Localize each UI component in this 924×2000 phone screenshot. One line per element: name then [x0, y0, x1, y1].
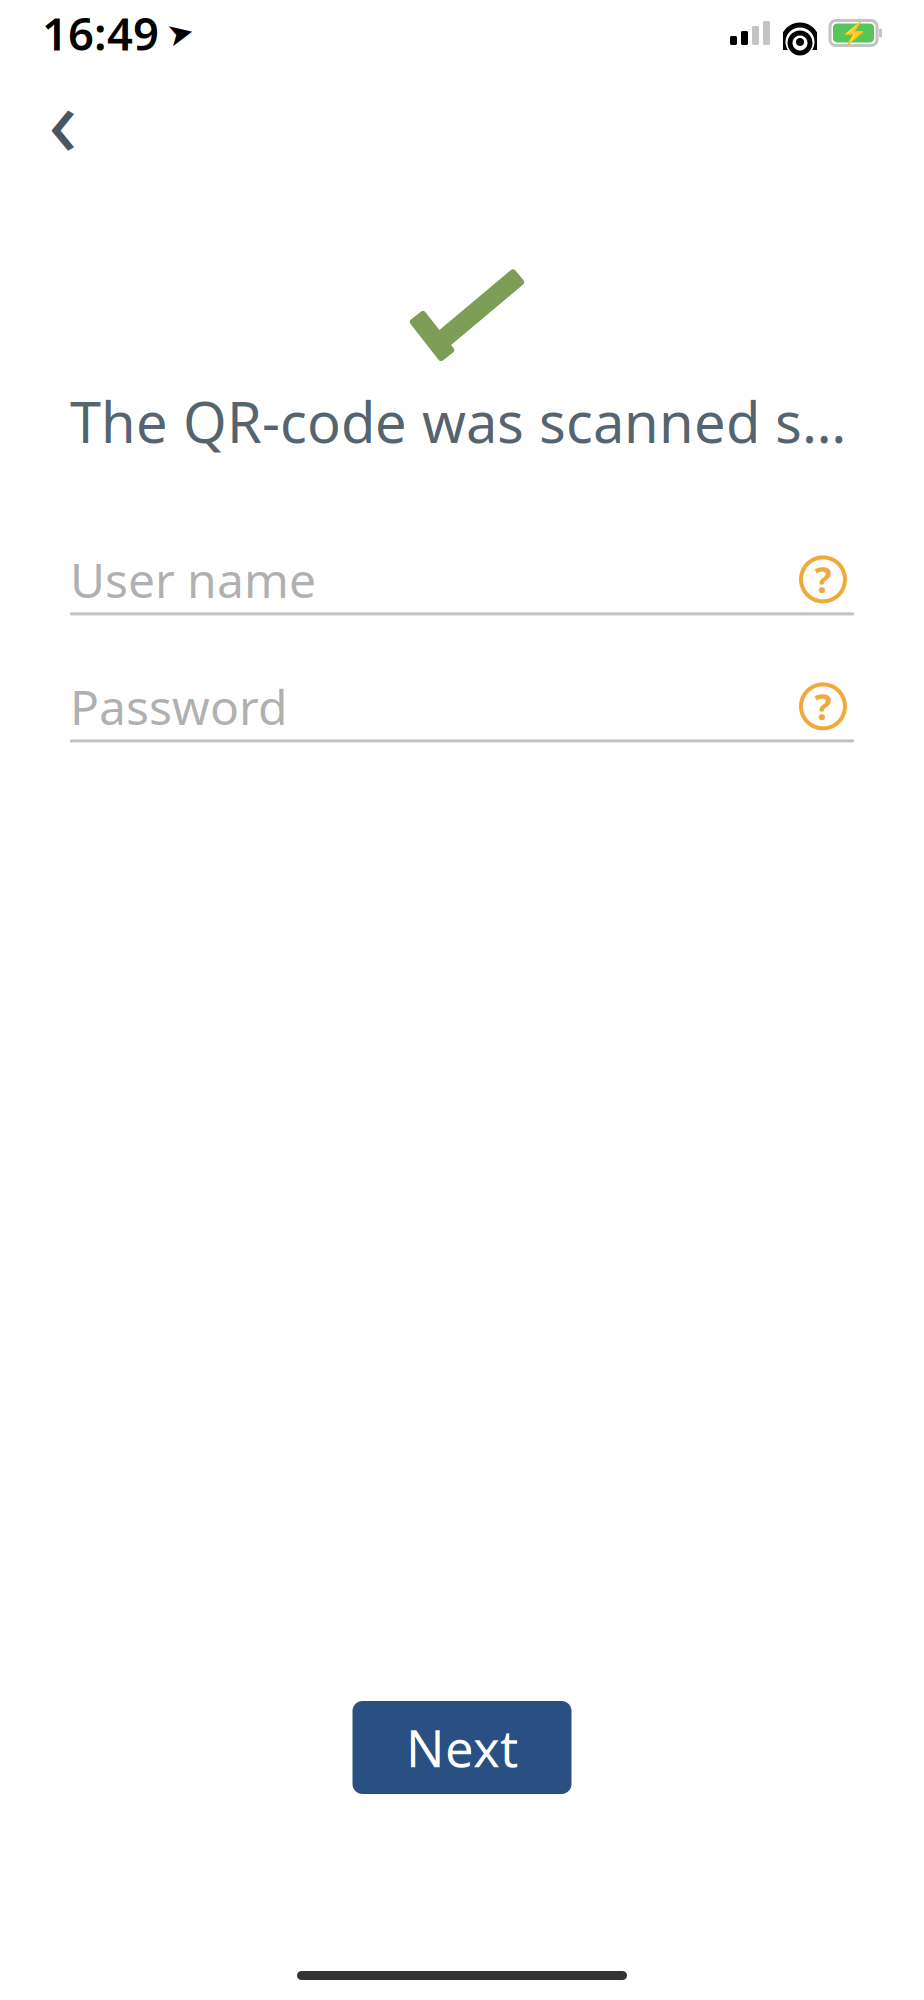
staticText: The QR-code was scanned successf… — [70, 384, 854, 458]
staticText: Next — [406, 1714, 518, 1781]
button[interactable]: Back — [26, 82, 100, 156]
staticText: ? — [814, 555, 831, 603]
button[interactable]: Next — [352, 1701, 571, 1794]
staticText: 16:49 — [42, 3, 159, 63]
button[interactable]: Help with password — [792, 675, 854, 737]
staticText: ➤ — [167, 15, 194, 51]
button[interactable]: Help with user name — [792, 548, 854, 610]
staticText: ⚡ — [839, 20, 867, 46]
staticText: ? — [814, 682, 831, 730]
staticText: Password — [70, 674, 288, 738]
staticText: ‹ — [48, 55, 78, 183]
staticText: User name — [70, 547, 316, 611]
